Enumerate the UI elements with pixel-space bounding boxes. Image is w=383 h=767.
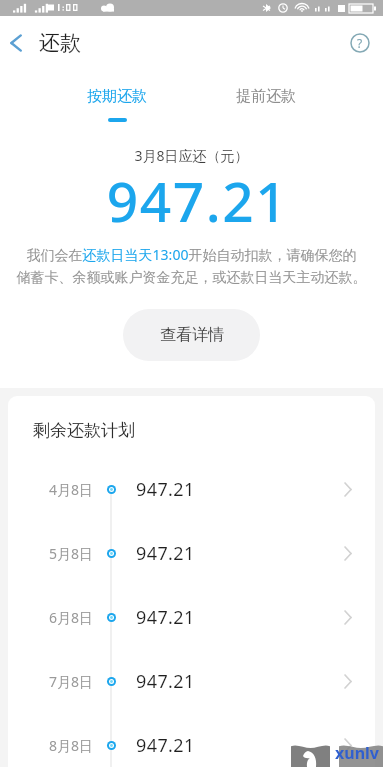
button[interactable]: 8月8日 xyxy=(8,713,375,767)
staticText: 7月8日 xyxy=(49,672,94,691)
staticText: 3月8日应还（元） xyxy=(0,146,383,165)
staticText: 剩余还款计划 xyxy=(33,420,135,441)
button[interactable]: 查看详情 xyxy=(123,309,260,361)
button[interactable]: Back xyxy=(0,21,31,65)
staticText: 947.21 xyxy=(136,669,195,694)
staticText: 还款 xyxy=(39,30,81,56)
staticText: xunlv xyxy=(335,742,379,764)
staticText: 947.21 xyxy=(136,541,195,566)
button[interactable]: 4月8日 xyxy=(8,457,375,521)
button[interactable]: Help xyxy=(348,31,372,55)
staticText: 947.21 xyxy=(136,605,195,630)
staticText: 我们会在还款日当天13:00开始自动扣款，请确保您的 储蓄卡、余额或账户资金充足… xyxy=(10,245,373,287)
staticText: 4月8日 xyxy=(49,480,94,499)
staticText: 6月8日 xyxy=(49,608,94,627)
staticText: 5月8日 xyxy=(49,544,94,563)
staticText: 947.21 xyxy=(6,163,383,238)
button[interactable]: 7月8日 xyxy=(8,649,375,713)
staticText: 8月8日 xyxy=(49,736,94,755)
staticText: 按期还款 xyxy=(87,87,147,106)
staticText: ? xyxy=(357,35,363,51)
button[interactable]: 按期还款 xyxy=(43,70,191,122)
staticText: 947.21 xyxy=(136,733,195,758)
button[interactable]: 提前还款 xyxy=(191,70,340,118)
staticText: 提前还款 xyxy=(236,87,296,106)
staticText: 查看详情 xyxy=(160,325,224,345)
button[interactable]: 5月8日 xyxy=(8,521,375,585)
button[interactable]: 6月8日 xyxy=(8,585,375,649)
staticText: 947.21 xyxy=(136,477,195,502)
